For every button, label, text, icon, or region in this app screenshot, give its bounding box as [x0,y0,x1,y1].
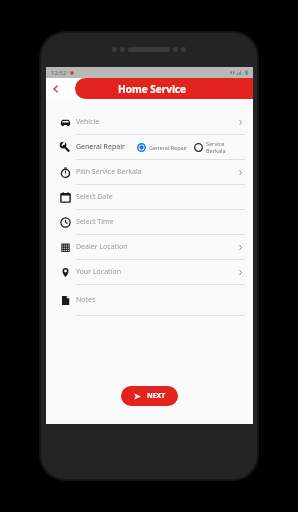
staticText: Notes [76,295,96,305]
button[interactable]: Service Berkala [194,140,245,154]
staticText: Dealer Location [76,242,128,252]
staticText: General Repair [149,144,188,151]
button[interactable]: Notes [54,285,245,316]
button[interactable]: Dealer Location [54,235,245,260]
staticText: Select Time [76,217,114,227]
staticText: Select Date [76,192,113,202]
button[interactable]: Home Service [75,78,253,99]
staticText: Vehicle [76,117,100,127]
staticText: General Repair [76,142,125,152]
button[interactable]: Vehicle [54,110,245,135]
button[interactable]: Select Date [54,185,245,210]
button[interactable]: NEXT [121,386,178,406]
button[interactable]: Your Location [54,260,245,285]
staticText: Your Location [76,267,121,277]
staticText: Pilih Service Berkala [76,167,142,177]
button[interactable]: Pilih Service Berkala [54,160,245,185]
staticText: 12:52 [51,69,67,77]
button[interactable]: General Repair [137,143,188,152]
staticText: Service Berkala [206,140,245,154]
staticText: Home Service [118,82,186,96]
button[interactable]: Select Time [54,210,245,235]
staticText: NEXT [147,391,166,401]
button[interactable]: Back [46,79,66,99]
